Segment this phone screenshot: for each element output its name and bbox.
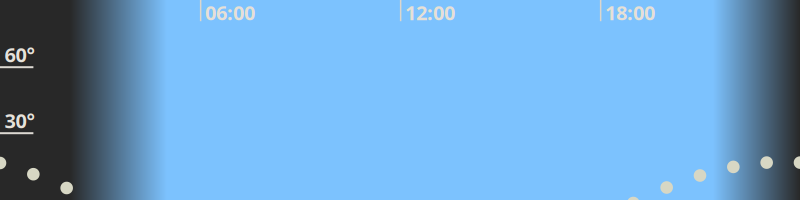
staticText: 12:00 <box>405 0 455 26</box>
staticText: 30° <box>4 107 34 134</box>
staticText: 60° <box>4 41 34 68</box>
staticText: 06:00 <box>205 0 255 26</box>
staticText: 18:00 <box>605 0 655 26</box>
